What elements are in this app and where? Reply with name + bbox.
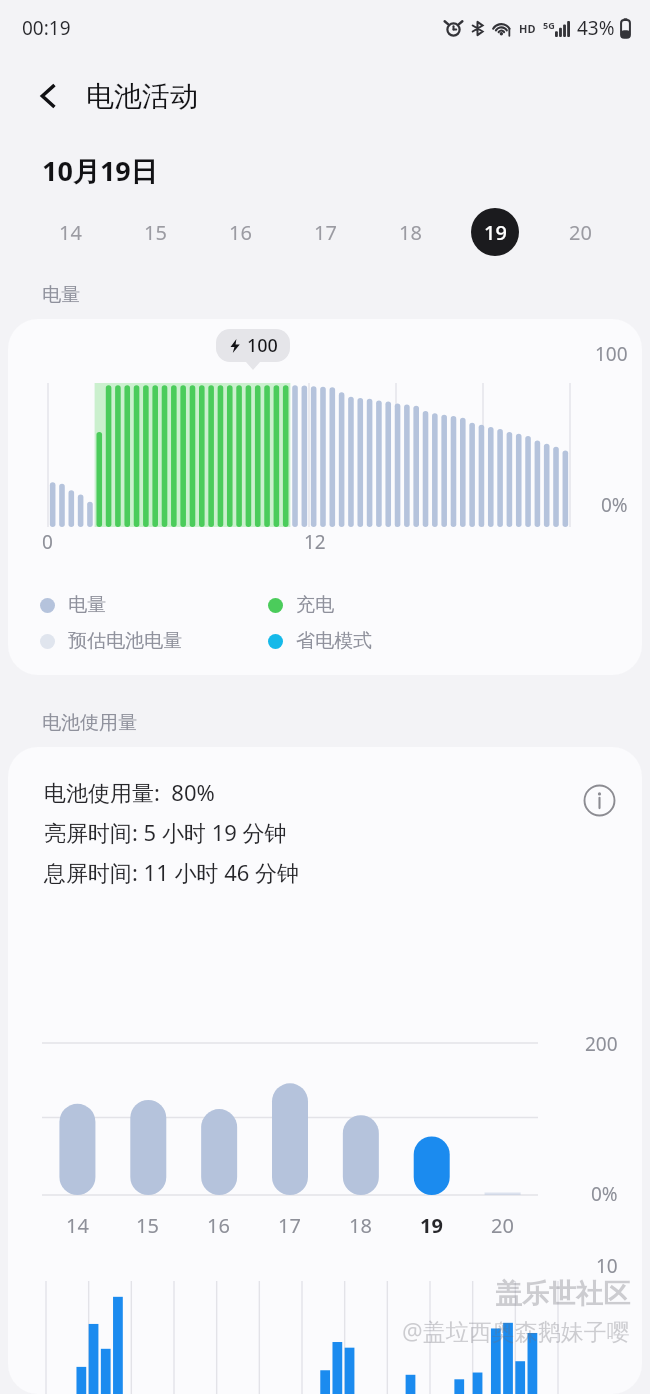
- button[interactable]: 15: [131, 208, 179, 256]
- staticText: 43%: [577, 15, 615, 41]
- staticText: 15: [144, 219, 167, 246]
- staticText: 16: [207, 1212, 230, 1239]
- button[interactable]: 14: [46, 208, 94, 256]
- staticText: 100: [595, 341, 628, 367]
- button[interactable]: 18: [386, 208, 434, 256]
- staticText: 电池使用量: [42, 711, 137, 735]
- staticText: 省电模式: [296, 629, 372, 653]
- staticText: 息屏时间: 11 小时 46 分钟: [44, 857, 300, 887]
- staticText: 20: [491, 1212, 514, 1239]
- staticText: 19: [420, 1212, 443, 1239]
- staticText: 18: [349, 1212, 372, 1239]
- staticText: 00:19: [22, 15, 71, 41]
- staticText: 20: [569, 219, 592, 246]
- button[interactable]: Info: [576, 777, 622, 823]
- staticText: 电量: [68, 593, 106, 617]
- staticText: 亮屏时间: 5 小时 19 分钟: [44, 817, 287, 847]
- staticText: 16: [229, 219, 252, 246]
- staticText: 电池活动: [86, 79, 198, 114]
- staticText: 12: [304, 529, 326, 555]
- staticText: 盖乐世社区: [495, 1277, 630, 1311]
- staticText: HD: [519, 21, 536, 36]
- button[interactable]: Back: [24, 72, 72, 120]
- staticText: 19: [484, 219, 507, 246]
- staticText: 100: [247, 333, 278, 358]
- staticText: 17: [278, 1212, 301, 1239]
- staticText: 0%: [601, 492, 628, 518]
- button[interactable]: 20: [556, 208, 604, 256]
- button[interactable]: 100: [8, 319, 642, 675]
- staticText: 充电: [296, 593, 334, 617]
- staticText: 预估电池电量: [68, 629, 182, 653]
- staticText: 0%: [591, 1181, 618, 1207]
- staticText: 10月19日: [42, 152, 158, 189]
- staticText: 17: [314, 219, 337, 246]
- button[interactable]: 17: [301, 208, 349, 256]
- staticText: 10: [596, 1253, 618, 1279]
- staticText: 5G: [543, 19, 555, 31]
- staticText: 电量: [42, 283, 80, 307]
- staticText: 15: [136, 1212, 159, 1239]
- staticText: 14: [59, 219, 82, 246]
- button[interactable]: 16: [216, 208, 264, 256]
- staticText: @盖垃西奥森鹅妹子嘤: [402, 1315, 630, 1346]
- staticText: 14: [66, 1212, 89, 1239]
- staticText: 电池使用量: 80%: [44, 777, 215, 807]
- staticText: 0: [42, 529, 53, 555]
- staticText: 200: [585, 1031, 618, 1057]
- button[interactable]: 19: [471, 208, 519, 256]
- staticText: 18: [399, 219, 422, 246]
